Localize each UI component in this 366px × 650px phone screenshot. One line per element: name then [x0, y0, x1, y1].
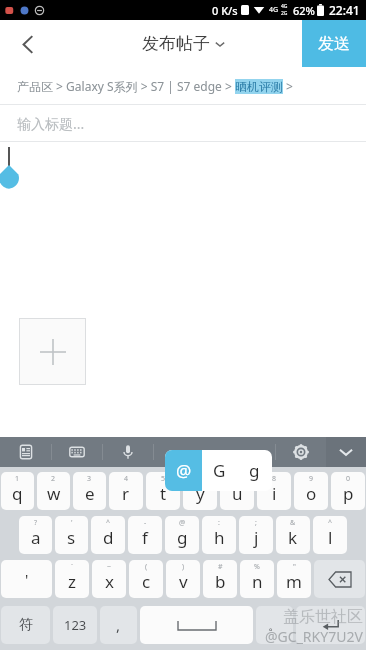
- button[interactable]: 发送: [302, 20, 366, 67]
- button[interactable]: ~: [92, 560, 126, 598]
- staticText: 62%: [293, 3, 315, 18]
- button[interactable]: 符: [1, 606, 50, 644]
- button[interactable]: (: [129, 560, 163, 598]
- button[interactable]: @: [165, 516, 199, 554]
- button[interactable]: Shift: [1, 560, 52, 598]
- staticText: ^: [328, 518, 333, 528]
- button[interactable]: ': [55, 516, 88, 554]
- staticText: u: [232, 482, 243, 505]
- button[interactable]: 5: [146, 472, 180, 510]
- staticText: `: [71, 562, 73, 572]
- staticText: r: [122, 482, 130, 505]
- staticText: 8: [272, 474, 277, 484]
- button[interactable]: Enter: [296, 606, 365, 644]
- button[interactable]: Space: [140, 606, 253, 644]
- staticText: f: [142, 526, 148, 549]
- button[interactable]: 9: [294, 472, 328, 510]
- button[interactable]: 发布帖子: [142, 33, 225, 54]
- staticText: s: [67, 526, 76, 549]
- staticText: 产品区 > Galaxy S系列 > S7 | S7 edge >: [17, 78, 235, 94]
- button[interactable]: Keyboard: [52, 437, 102, 467]
- button[interactable]: ": [277, 560, 311, 598]
- staticText: @: [179, 518, 186, 528]
- button[interactable]: 8: [257, 472, 291, 510]
- button[interactable]: 3: [73, 472, 106, 510]
- button[interactable]: Backspace: [314, 560, 365, 598]
- button[interactable]: :: [202, 516, 236, 554]
- staticText: q: [12, 482, 23, 505]
- button[interactable]: 0: [331, 472, 365, 510]
- staticText: %: [254, 562, 260, 572]
- staticText: 4G: [269, 5, 279, 15]
- button[interactable]: &: [276, 516, 310, 554]
- staticText: 符: [19, 616, 33, 634]
- staticText: w: [47, 482, 61, 505]
- staticText: z: [68, 570, 76, 593]
- staticText: :: [218, 518, 220, 528]
- staticText: @GC_RKY7U2V: [265, 627, 363, 646]
- button[interactable]: Hide keyboard: [326, 437, 366, 467]
- staticText: ": [293, 562, 296, 572]
- button[interactable]: Add image: [19, 318, 86, 385]
- staticText: d: [103, 526, 114, 549]
- button[interactable]: %: [240, 560, 274, 598]
- staticText: x: [105, 570, 114, 593]
- staticText: ,: [116, 615, 121, 635]
- staticText: ): [182, 562, 185, 572]
- button[interactable]: Settings: [276, 437, 326, 467]
- staticText: ;: [255, 518, 257, 528]
- button[interactable]: ^: [313, 516, 347, 554]
- button[interactable]: ,: [100, 606, 137, 644]
- staticText: (: [145, 562, 148, 572]
- button[interactable]: 输入标题...: [0, 105, 366, 142]
- button[interactable]: 123: [53, 606, 97, 644]
- button[interactable]: 6: [183, 472, 217, 510]
- button[interactable]: @: [165, 450, 202, 491]
- staticText: y: [196, 482, 205, 505]
- staticText: -: [144, 518, 147, 528]
- button[interactable]: ^: [91, 516, 125, 554]
- staticText: b: [215, 570, 226, 593]
- button[interactable]: 4: [109, 472, 143, 510]
- button[interactable]: `: [55, 560, 89, 598]
- button[interactable]: 2: [37, 472, 70, 510]
- staticText: g: [177, 526, 188, 549]
- staticText: 5: [161, 474, 166, 484]
- staticText: 。: [268, 617, 281, 633]
- button[interactable]: 1: [1, 472, 34, 510]
- staticText: ~: [107, 562, 112, 572]
- button[interactable]: 产品区 > Galaxy S系列 > S7 | S7 edge >: [17, 78, 293, 94]
- button[interactable]: ;: [239, 516, 273, 554]
- button[interactable]: 。: [256, 606, 293, 644]
- button[interactable]: g: [237, 450, 272, 491]
- button[interactable]: #: [203, 560, 237, 598]
- button[interactable]: ): [166, 560, 200, 598]
- button[interactable]: -: [128, 516, 162, 554]
- staticText: m: [286, 570, 302, 593]
- button[interactable]: ?: [19, 516, 52, 554]
- button[interactable]: Apps: [323, 491, 365, 533]
- staticText: 盖乐世社区: [283, 607, 363, 627]
- button[interactable]: G: [202, 450, 237, 491]
- staticText: &: [290, 518, 296, 528]
- staticText: n: [252, 570, 263, 593]
- staticText: o: [306, 482, 317, 505]
- staticText: c: [142, 570, 151, 593]
- staticText: 2G: [281, 10, 288, 17]
- staticText: 晒机评测: [235, 79, 283, 94]
- staticText: t: [160, 482, 167, 505]
- staticText: >: [286, 78, 293, 94]
- button[interactable]: Clipboard: [0, 437, 51, 467]
- staticText: 0: [346, 474, 351, 484]
- staticText: 1: [15, 474, 20, 484]
- staticText: ^: [106, 518, 111, 528]
- staticText: 发送: [318, 34, 350, 54]
- button[interactable]: 7: [220, 472, 254, 510]
- staticText: g: [249, 459, 260, 482]
- button[interactable]: Back: [6, 22, 50, 66]
- staticText: 输入标题...: [17, 114, 85, 133]
- staticText: ?: [34, 518, 38, 528]
- button[interactable]: Voice input: [103, 437, 153, 467]
- staticText: a: [31, 526, 41, 549]
